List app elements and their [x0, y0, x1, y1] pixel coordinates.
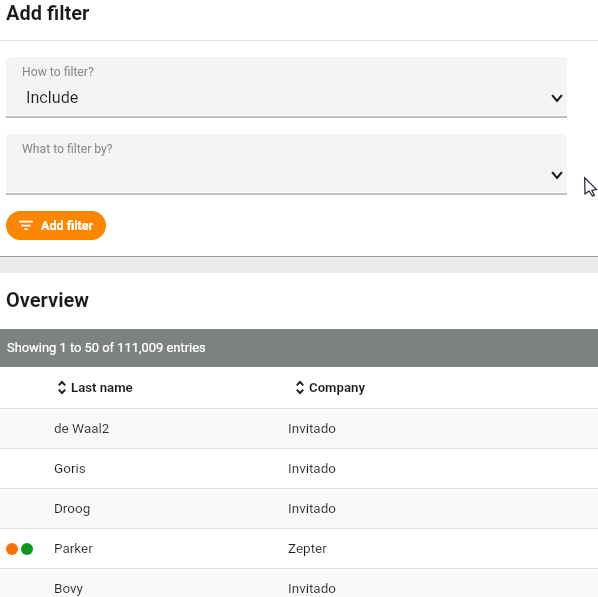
staticText: Invitado [288, 420, 337, 436]
staticText: Invitado [288, 500, 337, 516]
staticText: Invitado [288, 580, 337, 596]
staticText: Company [309, 380, 366, 395]
staticText: Overview [6, 288, 90, 311]
staticText: Add filter [6, 1, 90, 24]
staticText: Last name [71, 380, 133, 395]
staticText: What to filter by? [22, 142, 113, 156]
staticText: de Waal2 [54, 420, 110, 436]
button[interactable]: Goris [0, 449, 598, 488]
staticText: Droog [54, 500, 91, 516]
staticText: Invitado [288, 460, 337, 476]
staticText: Include [26, 88, 79, 107]
staticText: Bovy [54, 580, 83, 596]
button[interactable]: Sort [296, 367, 536, 408]
button[interactable]: How to filter? [6, 57, 567, 115]
button[interactable]: What to filter by? [6, 134, 567, 192]
staticText: Parker [54, 540, 93, 556]
staticText: Add filter [41, 218, 94, 233]
staticText: How to filter? [22, 65, 94, 79]
button[interactable]: Droog [0, 489, 598, 528]
button[interactable]: Add filter [6, 211, 106, 240]
other: Sort [296, 381, 304, 394]
staticText: Zepter [288, 540, 327, 556]
button[interactable]: Sort [58, 367, 298, 408]
staticText: Goris [54, 460, 86, 476]
other: Expand [551, 171, 563, 179]
button[interactable]: Bovy [0, 569, 598, 597]
staticText: Showing 1 to 50 of 111,009 entries [7, 340, 206, 355]
button[interactable]: de Waal2 [0, 409, 598, 448]
button[interactable]: Parker [0, 529, 598, 568]
other: Sort [58, 381, 66, 394]
other: Expand [551, 94, 563, 102]
